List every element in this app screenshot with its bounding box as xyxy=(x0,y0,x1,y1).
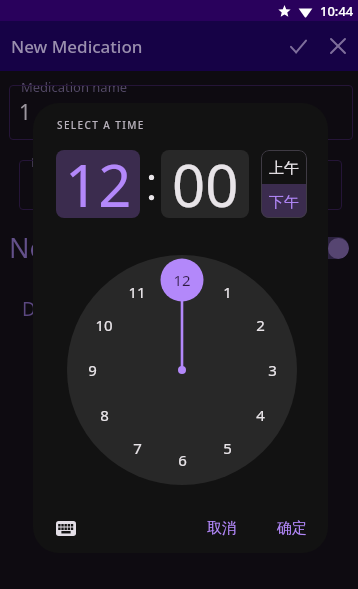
button[interactable]: 上午 xyxy=(261,150,307,184)
staticText: 00 xyxy=(172,150,239,213)
staticText: 1 xyxy=(19,98,32,127)
button[interactable]: 00 xyxy=(161,150,249,218)
button[interactable]: 12 xyxy=(56,150,140,218)
staticText: 9 xyxy=(88,360,97,380)
button[interactable]: 确定 xyxy=(268,512,316,545)
staticText: 2 xyxy=(256,315,265,335)
staticText: 10 xyxy=(95,315,113,335)
button[interactable]: Switch to text input xyxy=(49,511,83,545)
staticText: Dosage xyxy=(31,153,78,171)
staticText: 10:44 xyxy=(320,2,354,20)
staticText: 1 xyxy=(223,282,232,302)
staticText: Medication name xyxy=(21,78,128,96)
button[interactable]: 下午 xyxy=(261,184,307,218)
staticText: 12 xyxy=(65,150,132,213)
staticText: 8 xyxy=(100,405,109,425)
staticText: 7 xyxy=(133,438,142,458)
staticText: 取消 xyxy=(207,519,237,538)
staticText: 5 xyxy=(223,438,232,458)
staticText: Notifications xyxy=(9,229,170,266)
staticText: 3 xyxy=(268,360,277,380)
staticText: 上午 xyxy=(269,159,299,178)
staticText: 11 xyxy=(128,282,146,302)
staticText: SELECT A TIME xyxy=(57,118,145,132)
staticText: 4 xyxy=(256,405,265,425)
button[interactable]: Close xyxy=(323,31,353,61)
staticText: Daily at xyxy=(22,296,89,322)
button[interactable] xyxy=(307,237,349,259)
button[interactable]: Save xyxy=(284,31,314,61)
button[interactable]: 取消 xyxy=(198,512,246,545)
staticText: New Medication xyxy=(11,35,143,58)
staticText: 下午 xyxy=(269,193,299,212)
staticText: 6 xyxy=(178,450,187,470)
staticText: 确定 xyxy=(277,519,307,538)
staticText: 12 xyxy=(173,270,191,290)
